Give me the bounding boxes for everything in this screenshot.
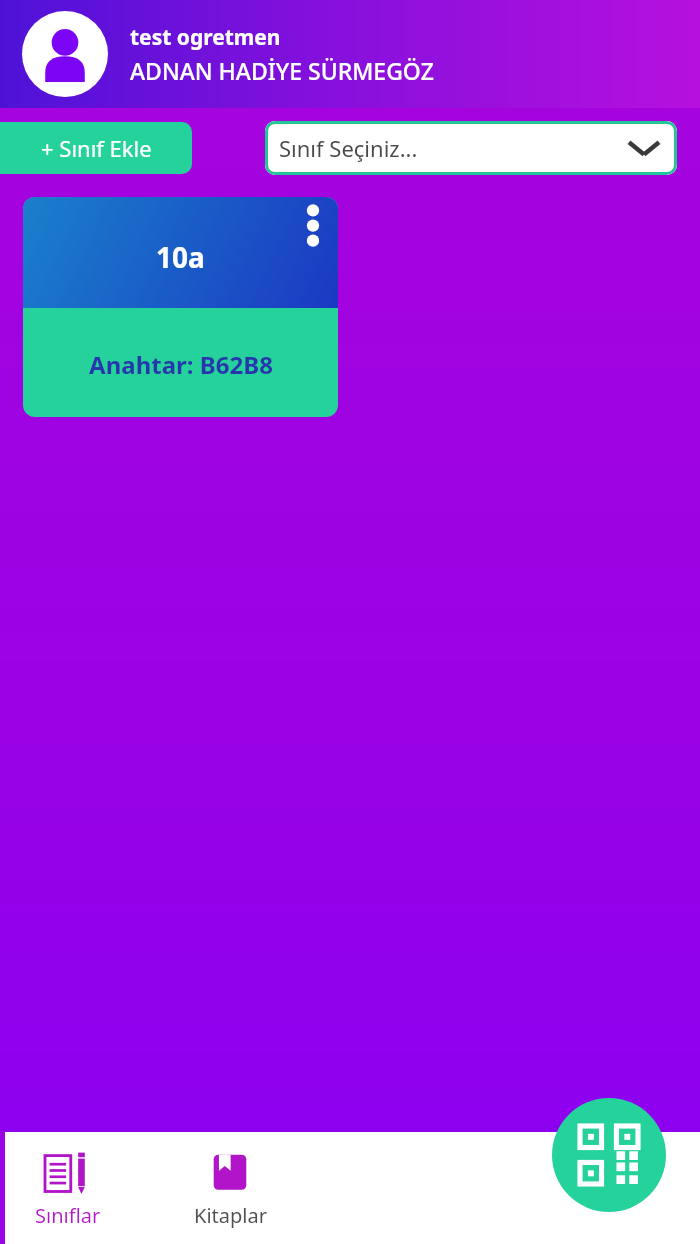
staticText: + Sınıf Ekle [41,133,152,163]
staticText: Sınıf Seçiniz... [279,133,418,163]
button[interactable]: QR kod tara [552,1098,666,1212]
button[interactable]: Profil [22,11,108,97]
staticText: Anahtar: B62B8 [89,348,273,381]
button[interactable]: + Sınıf Ekle [0,122,192,174]
button[interactable]: Daha fazla seçenek [298,205,328,247]
button[interactable]: Kitaplar [180,1132,280,1244]
button[interactable]: Sınıflar [18,1132,118,1244]
staticText: Sınıflar [35,1202,101,1229]
staticText: test ogretmen [130,23,281,52]
button[interactable]: 10a [23,197,338,417]
button[interactable]: Sınıf Seçiniz... [265,121,677,175]
staticText: ADNAN HADİYE SÜRMEGÖZ [130,55,434,86]
staticText: Kitaplar [194,1202,267,1229]
staticText: 10a [156,238,205,276]
